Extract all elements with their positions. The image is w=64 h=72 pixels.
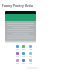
button[interactable] [28, 52, 32, 57]
button[interactable]: Funny Poetry Urdu [0, 0, 64, 9]
button[interactable] [21, 45, 25, 50]
button[interactable] [5, 11, 36, 43]
button[interactable] [28, 45, 32, 50]
staticText: Funny Poetry Urdu [2, 3, 33, 7]
button[interactable] [15, 45, 19, 50]
button[interactable] [15, 52, 19, 57]
button[interactable] [15, 59, 19, 64]
button[interactable] [21, 52, 25, 57]
button[interactable] [21, 59, 25, 64]
button[interactable] [28, 59, 32, 64]
